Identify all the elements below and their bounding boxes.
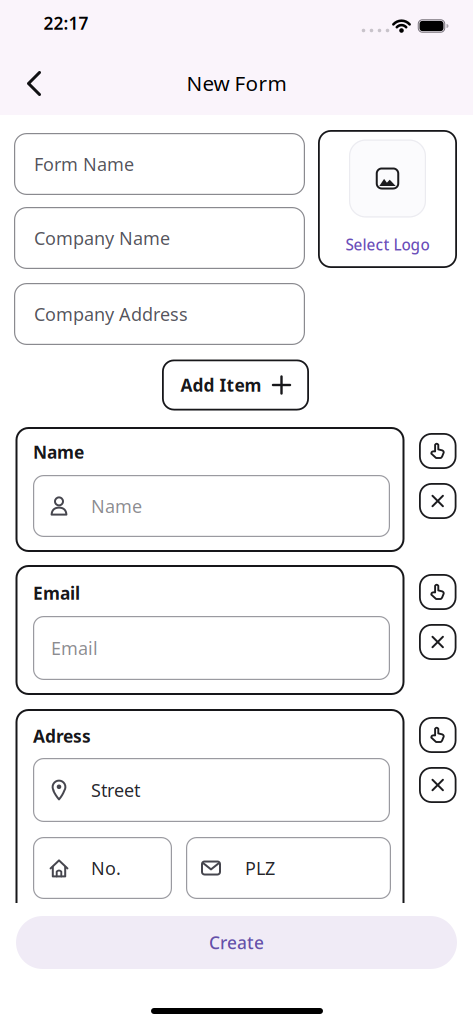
staticText: Company Address (34, 302, 188, 326)
button[interactable]: Create (16, 916, 457, 969)
staticText: No. (91, 856, 121, 880)
button[interactable]: Email (33, 616, 390, 680)
button[interactable]: Form Name (14, 133, 305, 195)
button[interactable] (419, 624, 456, 660)
button[interactable]: Select Logo (318, 130, 457, 268)
staticText: 22:17 (43, 11, 88, 35)
staticText: New Form (186, 69, 286, 97)
staticText: Email (33, 581, 80, 605)
button[interactable] (419, 717, 456, 753)
staticText: Adress (33, 724, 91, 748)
button[interactable]: PLZ (186, 837, 391, 899)
button[interactable] (419, 433, 456, 469)
button[interactable] (19, 61, 49, 105)
staticText: Select Logo (345, 234, 429, 255)
button[interactable]: Add Item (162, 359, 309, 410)
staticText: Name (33, 440, 84, 464)
button[interactable]: Company Name (14, 207, 305, 269)
button[interactable]: No. (33, 837, 172, 899)
staticText: PLZ (245, 856, 275, 880)
button[interactable] (419, 574, 456, 610)
staticText: Company Name (34, 226, 170, 250)
button[interactable] (419, 483, 456, 519)
staticText: Create (209, 931, 264, 954)
button[interactable]: Name (33, 475, 390, 537)
button[interactable]: Company Address (14, 283, 305, 345)
staticText: Street (91, 778, 140, 802)
staticText: Form Name (34, 152, 134, 176)
staticText: Name (91, 494, 142, 518)
staticText: Email (51, 636, 98, 660)
button[interactable]: Street (33, 758, 390, 822)
staticText: Add Item (180, 373, 261, 397)
button[interactable] (419, 767, 456, 803)
